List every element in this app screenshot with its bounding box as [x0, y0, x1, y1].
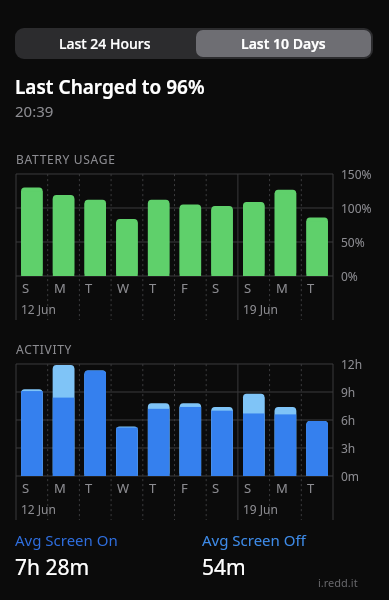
staticText: BATTERY USAGE [16, 151, 116, 167]
staticText: F [181, 279, 188, 297]
staticText: Last Charged to 96% [15, 74, 205, 100]
staticText: 19 Jun [243, 301, 278, 317]
staticText: 50% [341, 234, 365, 250]
staticText: S [244, 479, 252, 497]
staticText: T [85, 479, 93, 497]
staticText: 7h 28m [15, 553, 90, 582]
staticText: 100% [341, 200, 372, 216]
staticText: M [276, 479, 288, 497]
button[interactable]: Avg Screen Off [202, 530, 389, 582]
staticText: 6h [341, 412, 356, 428]
staticText: 150% [341, 166, 372, 182]
staticText: 12 Jun [21, 501, 56, 517]
staticText: S [212, 479, 220, 497]
staticText: F [181, 479, 188, 497]
staticText: ACTIVITY [16, 341, 73, 357]
staticText: 19 Jun [243, 501, 278, 517]
staticText: Avg Screen Off [202, 530, 306, 550]
staticText: i.redd.it [318, 575, 358, 590]
button[interactable]: Last 10 Days [196, 30, 371, 57]
staticText: Last 10 Days [241, 34, 326, 53]
staticText: T [307, 479, 315, 497]
staticText: Avg Screen On [15, 530, 118, 550]
staticText: T [307, 279, 315, 297]
staticText: S [212, 279, 220, 297]
staticText: 3h [341, 440, 356, 456]
staticText: 12 Jun [21, 301, 56, 317]
staticText: W [117, 279, 130, 297]
staticText: T [85, 279, 93, 297]
staticText: 9h [341, 384, 356, 400]
staticText: M [276, 279, 288, 297]
staticText: M [54, 279, 66, 297]
staticText: S [22, 279, 30, 297]
staticText: 12h [341, 356, 363, 372]
staticText: 54m [202, 553, 246, 582]
staticText: 0% [341, 268, 358, 284]
staticText: Last 24 Hours [59, 34, 151, 53]
button[interactable]: Avg Screen On [15, 530, 202, 582]
button[interactable]: Last 24 Hours [15, 28, 194, 59]
staticText: T [149, 279, 157, 297]
staticText: 0m [341, 468, 360, 484]
staticText: T [149, 479, 157, 497]
staticText: W [117, 479, 130, 497]
staticText: S [22, 479, 30, 497]
staticText: M [54, 479, 66, 497]
staticText: S [244, 279, 252, 297]
staticText: 20:39 [15, 101, 54, 121]
